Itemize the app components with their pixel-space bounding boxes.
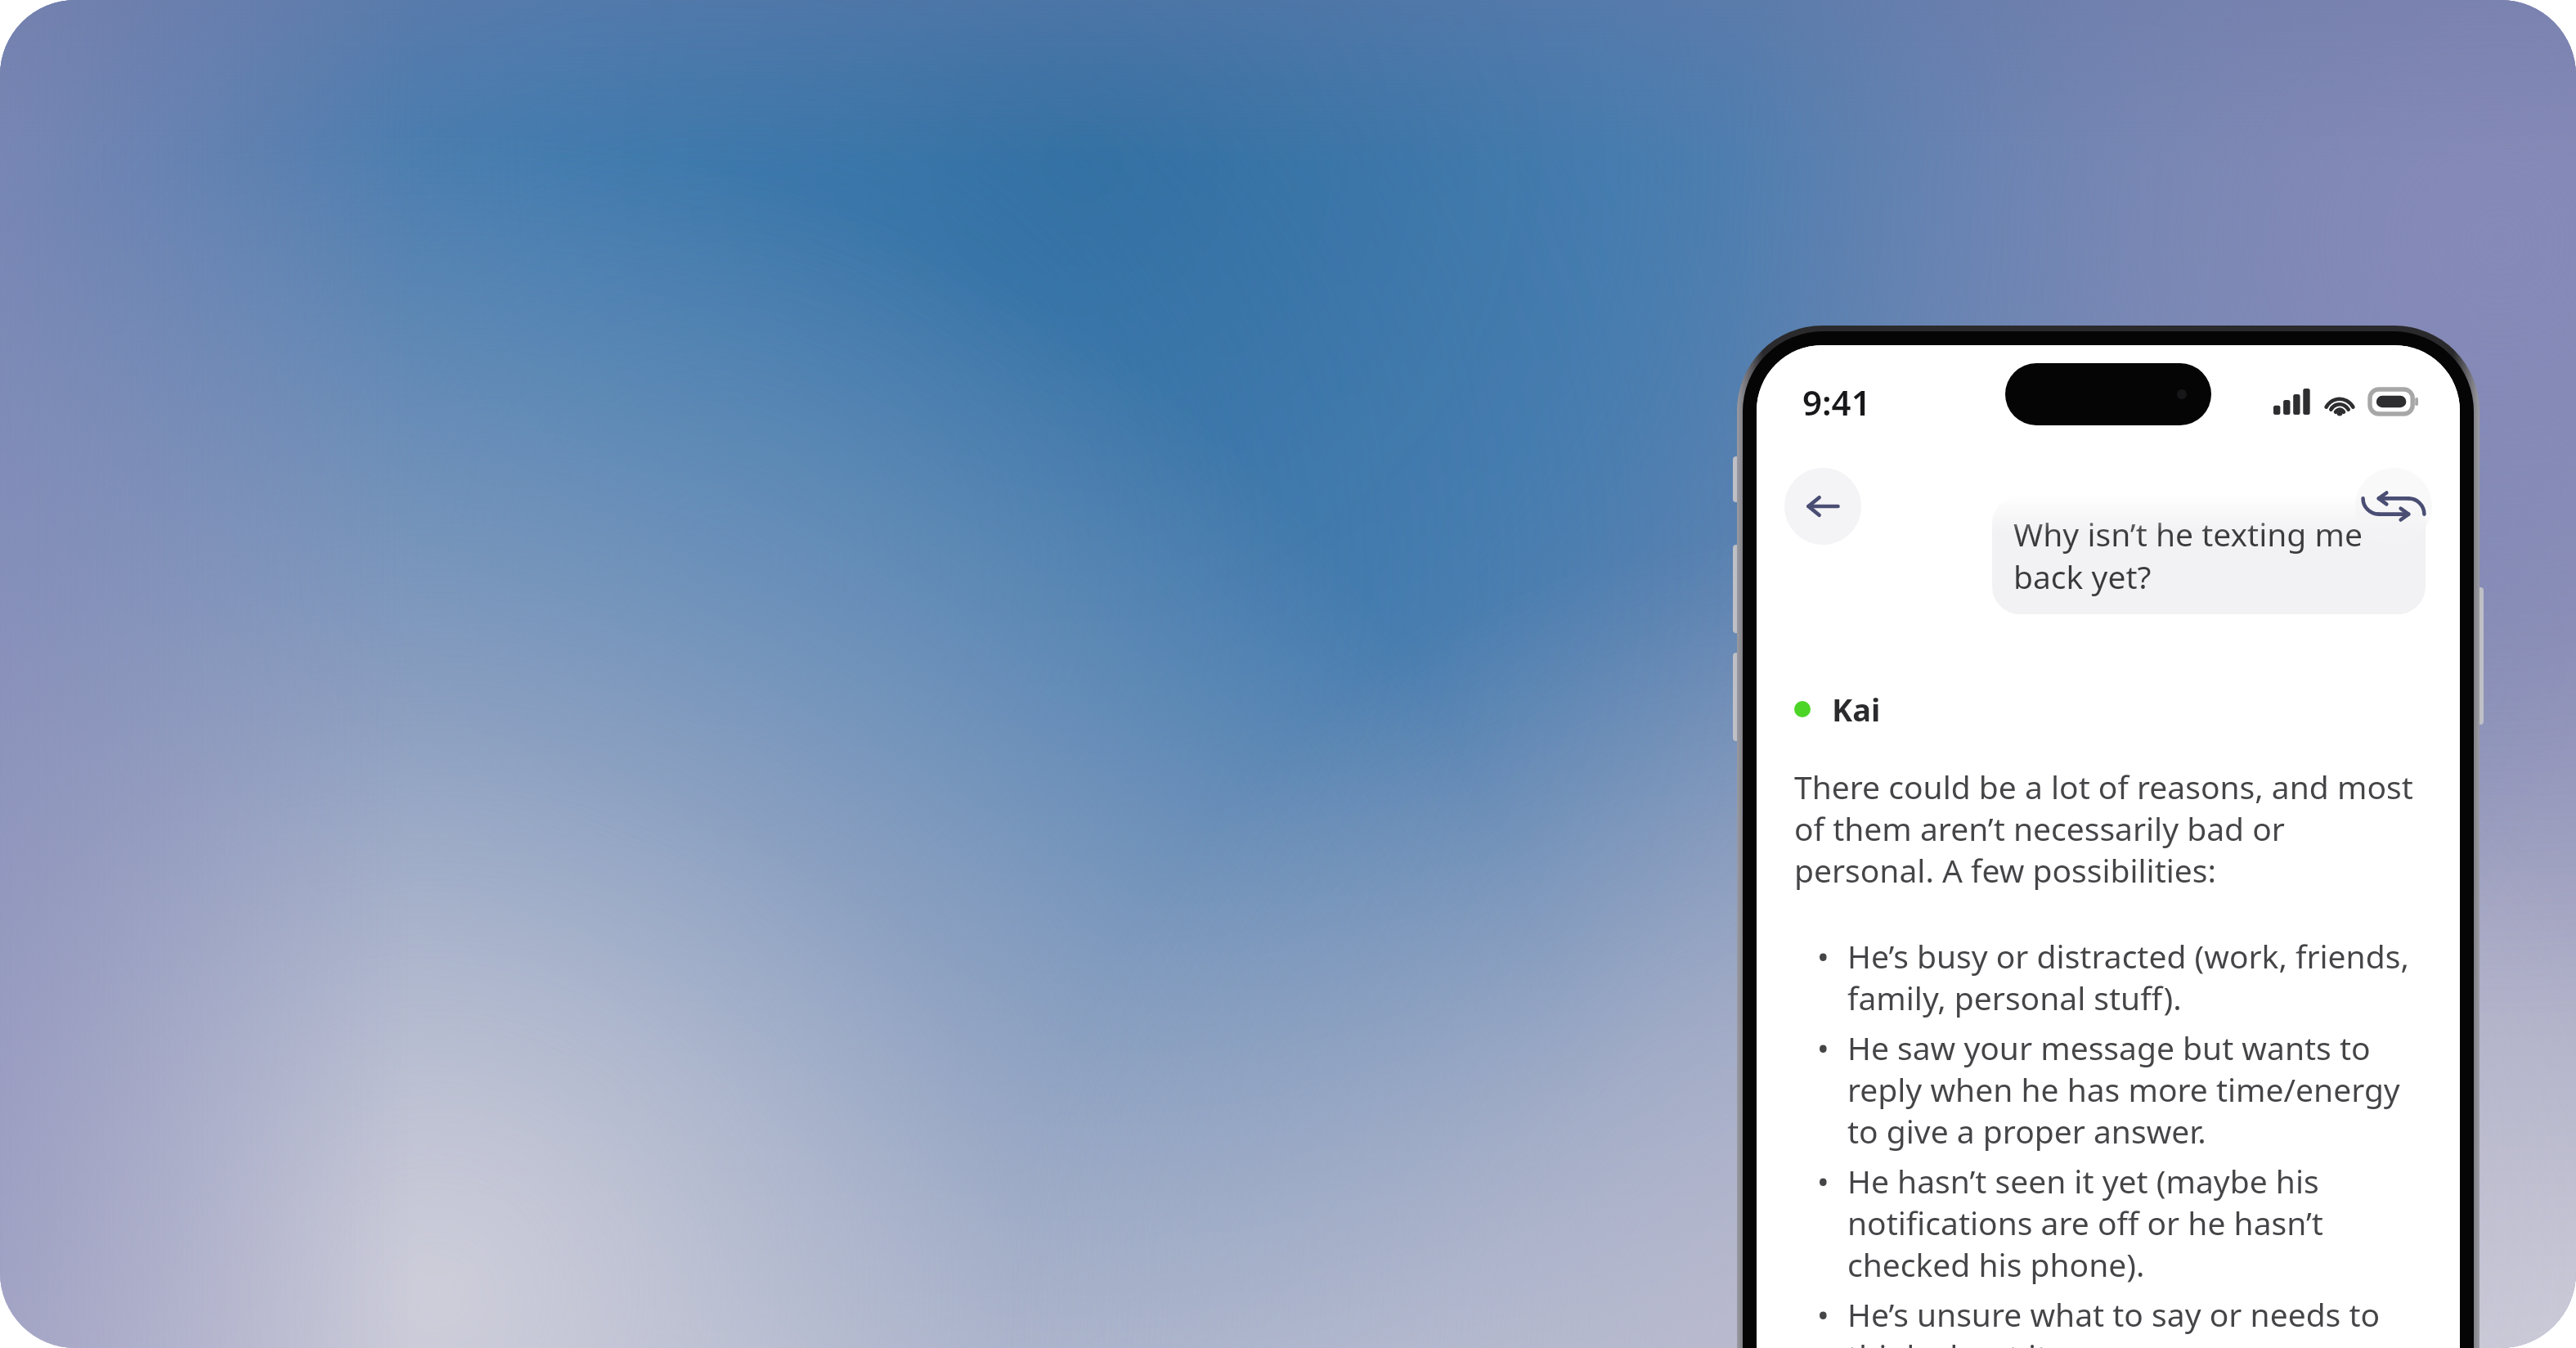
staticText: 9:41 [1802, 379, 1871, 425]
staticText: Kai [1832, 688, 1881, 730]
staticText: • [1817, 1026, 1829, 1069]
staticText: • [1817, 1292, 1829, 1336]
staticText: There could be a lot of reasons, and mos… [1794, 765, 2426, 892]
staticText: He saw your message but wants to reply w… [1847, 1026, 2426, 1153]
button[interactable]: Why isn’t he texting me back yet? [2013, 512, 2404, 598]
staticText: He’s unsure what to say or needs to thin… [1847, 1292, 2426, 1348]
staticText: • [1817, 934, 1829, 977]
button[interactable]: Back [1784, 468, 1861, 545]
staticText: • [1817, 1159, 1829, 1202]
staticText: He’s busy or distracted (work, friends, … [1847, 934, 2426, 1019]
button[interactable]: Swap model [2355, 468, 2432, 545]
staticText: Why isn’t he texting me back yet? [2013, 512, 2404, 598]
staticText: He hasn’t seen it yet (maybe his notific… [1847, 1159, 2426, 1286]
